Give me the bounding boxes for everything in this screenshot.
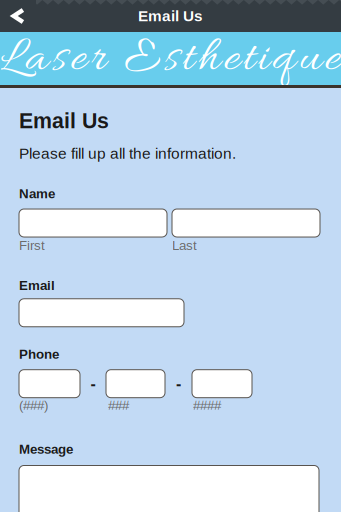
staticText: Phone xyxy=(19,347,59,362)
staticText: Email xyxy=(19,278,55,293)
staticText: Last xyxy=(172,238,197,253)
staticText: - xyxy=(90,375,95,393)
staticText: Name xyxy=(19,186,55,201)
staticText: Email Us xyxy=(138,7,203,24)
staticText: Email Us xyxy=(19,109,109,133)
staticText: #### xyxy=(193,398,221,413)
staticText: - xyxy=(176,375,181,393)
staticText: ### xyxy=(108,398,129,413)
staticText: First xyxy=(19,238,45,253)
staticText: Please fill up all the information. xyxy=(19,145,236,162)
button[interactable]: Back xyxy=(0,0,36,32)
staticText: (###) xyxy=(19,398,48,413)
staticText: Laser Esthetique xyxy=(0,28,340,91)
staticText: Message xyxy=(19,442,73,456)
